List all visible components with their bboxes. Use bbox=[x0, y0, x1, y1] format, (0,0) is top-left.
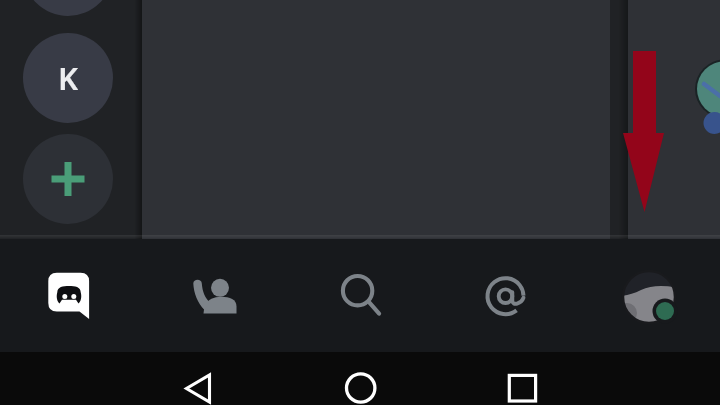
button[interactable]: You bbox=[576, 239, 720, 352]
button[interactable]: K bbox=[23, 33, 113, 123]
button[interactable]: Search bbox=[288, 239, 432, 352]
staticText: K bbox=[58, 57, 79, 99]
button[interactable]: Friends bbox=[144, 239, 288, 352]
button[interactable]: Mentions bbox=[432, 239, 576, 352]
button[interactable]: Add a server bbox=[23, 134, 113, 224]
button[interactable]: Home bbox=[0, 239, 144, 352]
